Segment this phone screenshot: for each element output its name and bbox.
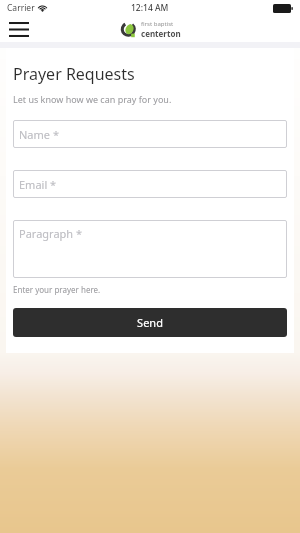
staticText: Paragraph * bbox=[19, 226, 83, 241]
staticText: Let us know how we can pray for you. bbox=[13, 93, 172, 105]
button[interactable]: Paragraph * bbox=[13, 220, 287, 278]
staticText: Send bbox=[137, 315, 163, 330]
button[interactable]: Name * bbox=[13, 120, 287, 148]
staticText: Enter your prayer here. bbox=[13, 284, 101, 295]
staticText: 12:14 AM bbox=[131, 2, 169, 14]
staticText: Email * bbox=[19, 177, 57, 192]
staticText: first baptist bbox=[141, 20, 174, 28]
staticText: Prayer Requests bbox=[13, 63, 135, 85]
button[interactable]: Send bbox=[13, 308, 287, 337]
staticText: Carrier bbox=[7, 2, 35, 14]
staticText: Name * bbox=[19, 127, 59, 142]
staticText: centerton bbox=[141, 28, 181, 39]
button[interactable]: Email * bbox=[13, 170, 287, 198]
button[interactable]: Open navigation menu bbox=[4, 17, 34, 41]
